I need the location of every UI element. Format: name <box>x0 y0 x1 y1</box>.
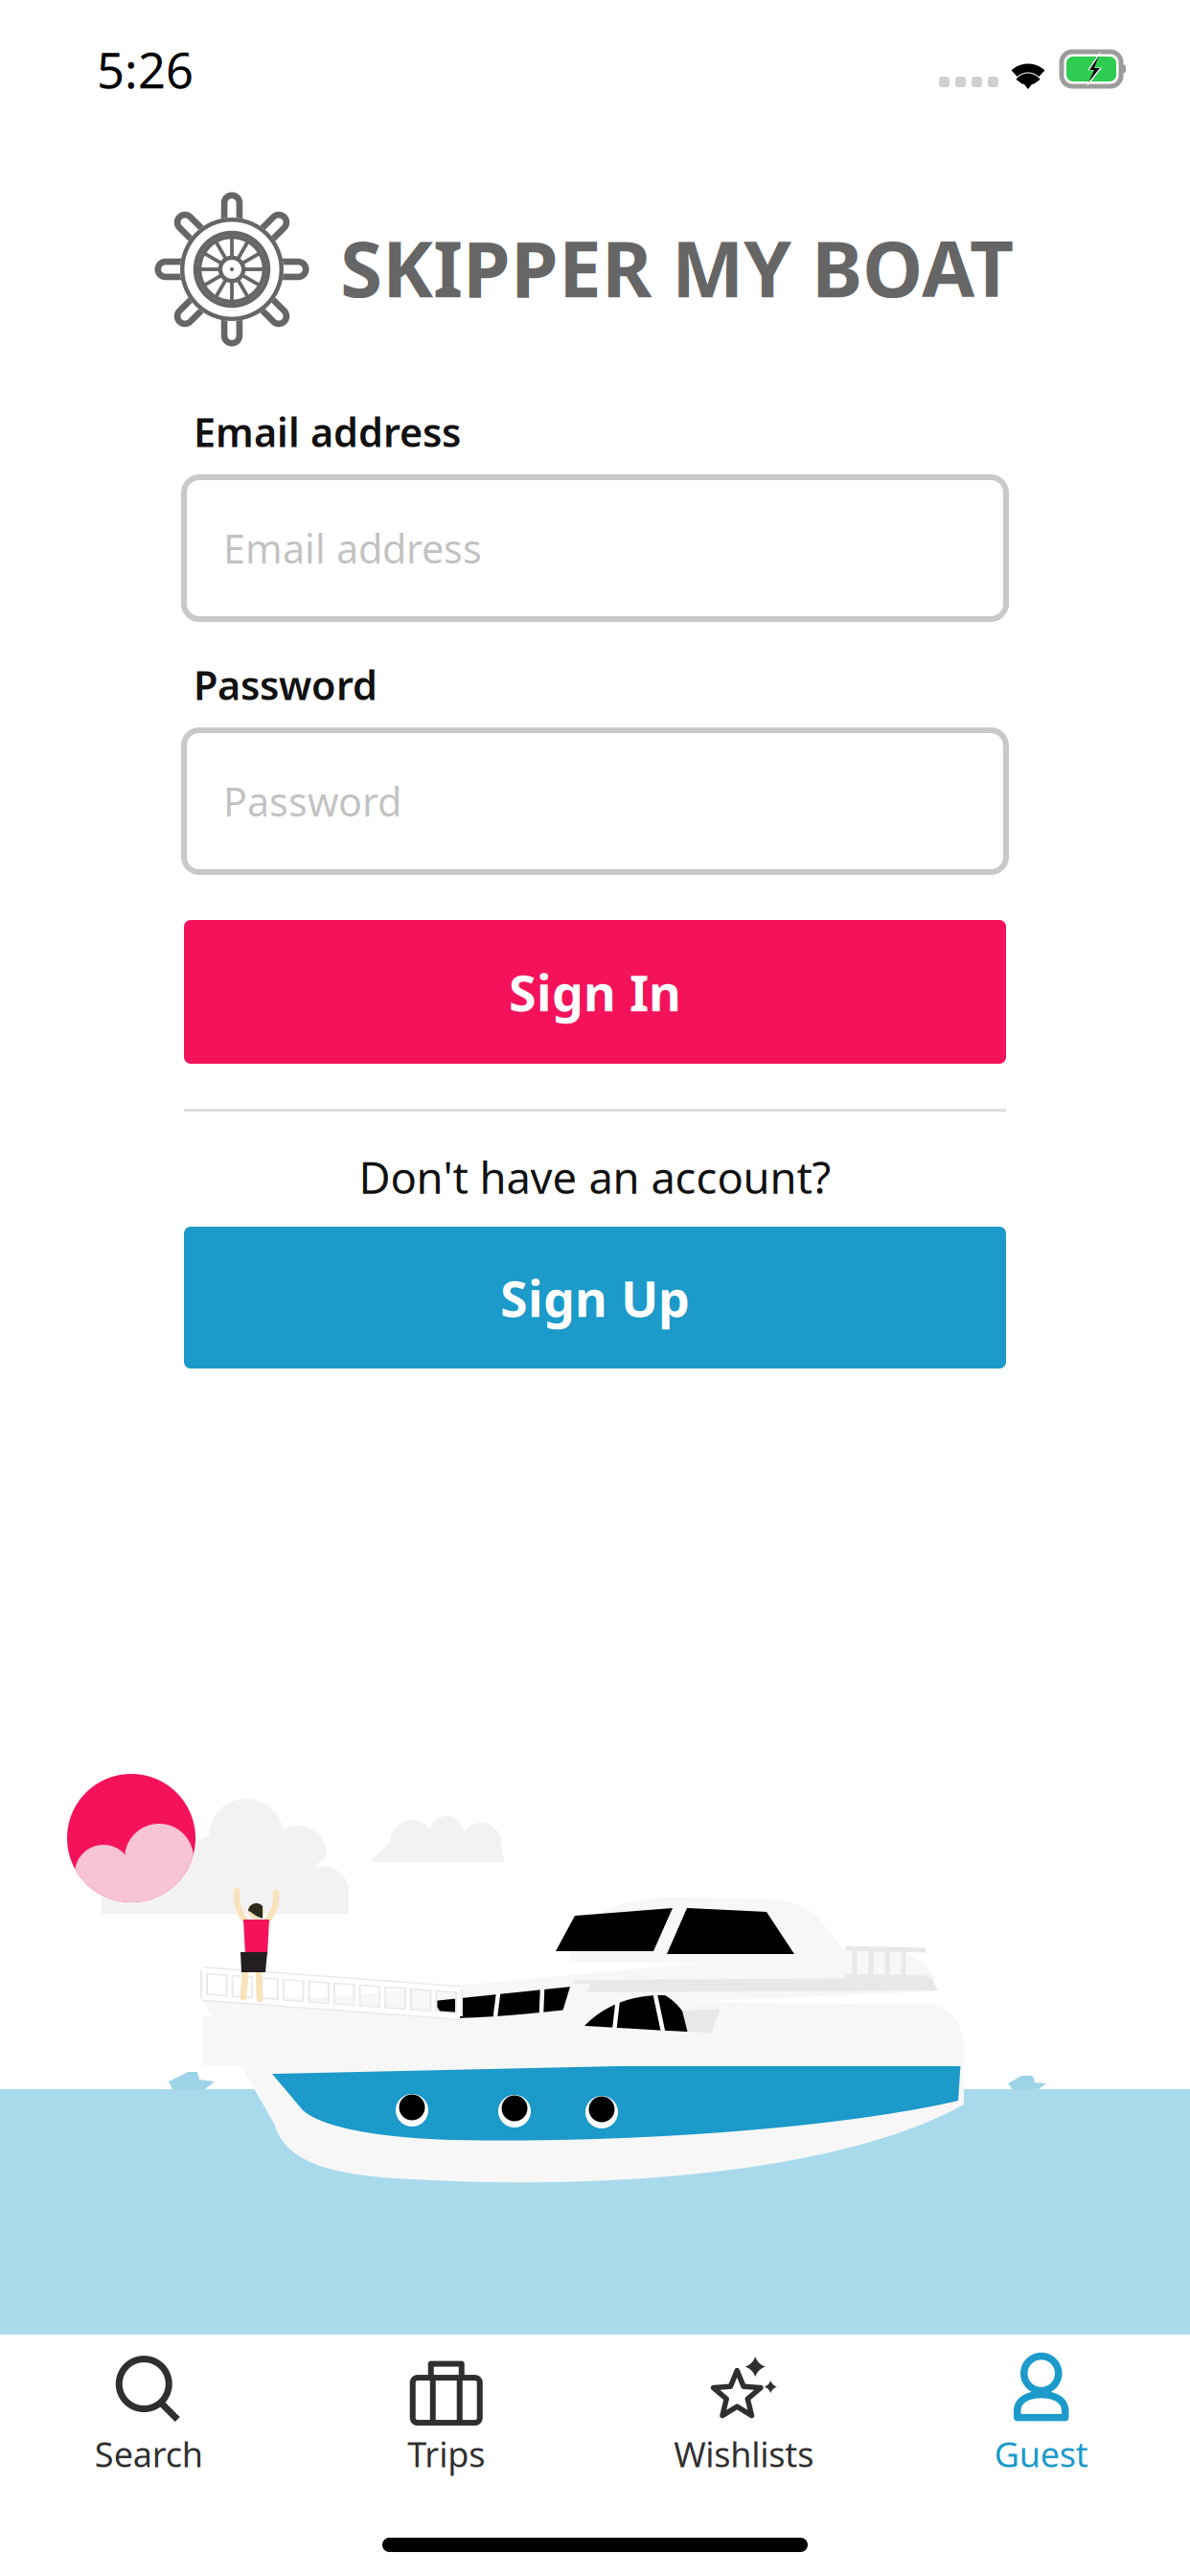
button[interactable]: Sign Up <box>184 1227 1006 1368</box>
button[interactable]: Sign In <box>184 920 1006 1064</box>
button[interactable]: Search <box>0 2351 297 2477</box>
staticText: Don't have an account? <box>359 1148 831 1206</box>
staticText: Sign Up <box>500 1265 690 1331</box>
button[interactable]: Guest <box>892 2351 1190 2477</box>
staticText: SKIPPER MY BOAT <box>340 217 1014 318</box>
staticText: Password <box>223 775 401 828</box>
button[interactable]: Wishlists <box>595 2351 892 2477</box>
staticText: Email address <box>194 405 461 458</box>
button[interactable]: Trips <box>297 2351 595 2477</box>
staticText: Search <box>95 2431 203 2477</box>
staticText: Guest <box>994 2431 1088 2477</box>
staticText: Trips <box>407 2431 485 2477</box>
staticText: Password <box>194 658 378 711</box>
staticText: Email address <box>223 522 482 575</box>
staticText: 5:26 <box>97 37 194 102</box>
staticText: Sign In <box>509 959 681 1025</box>
staticText: Wishlists <box>674 2431 814 2477</box>
